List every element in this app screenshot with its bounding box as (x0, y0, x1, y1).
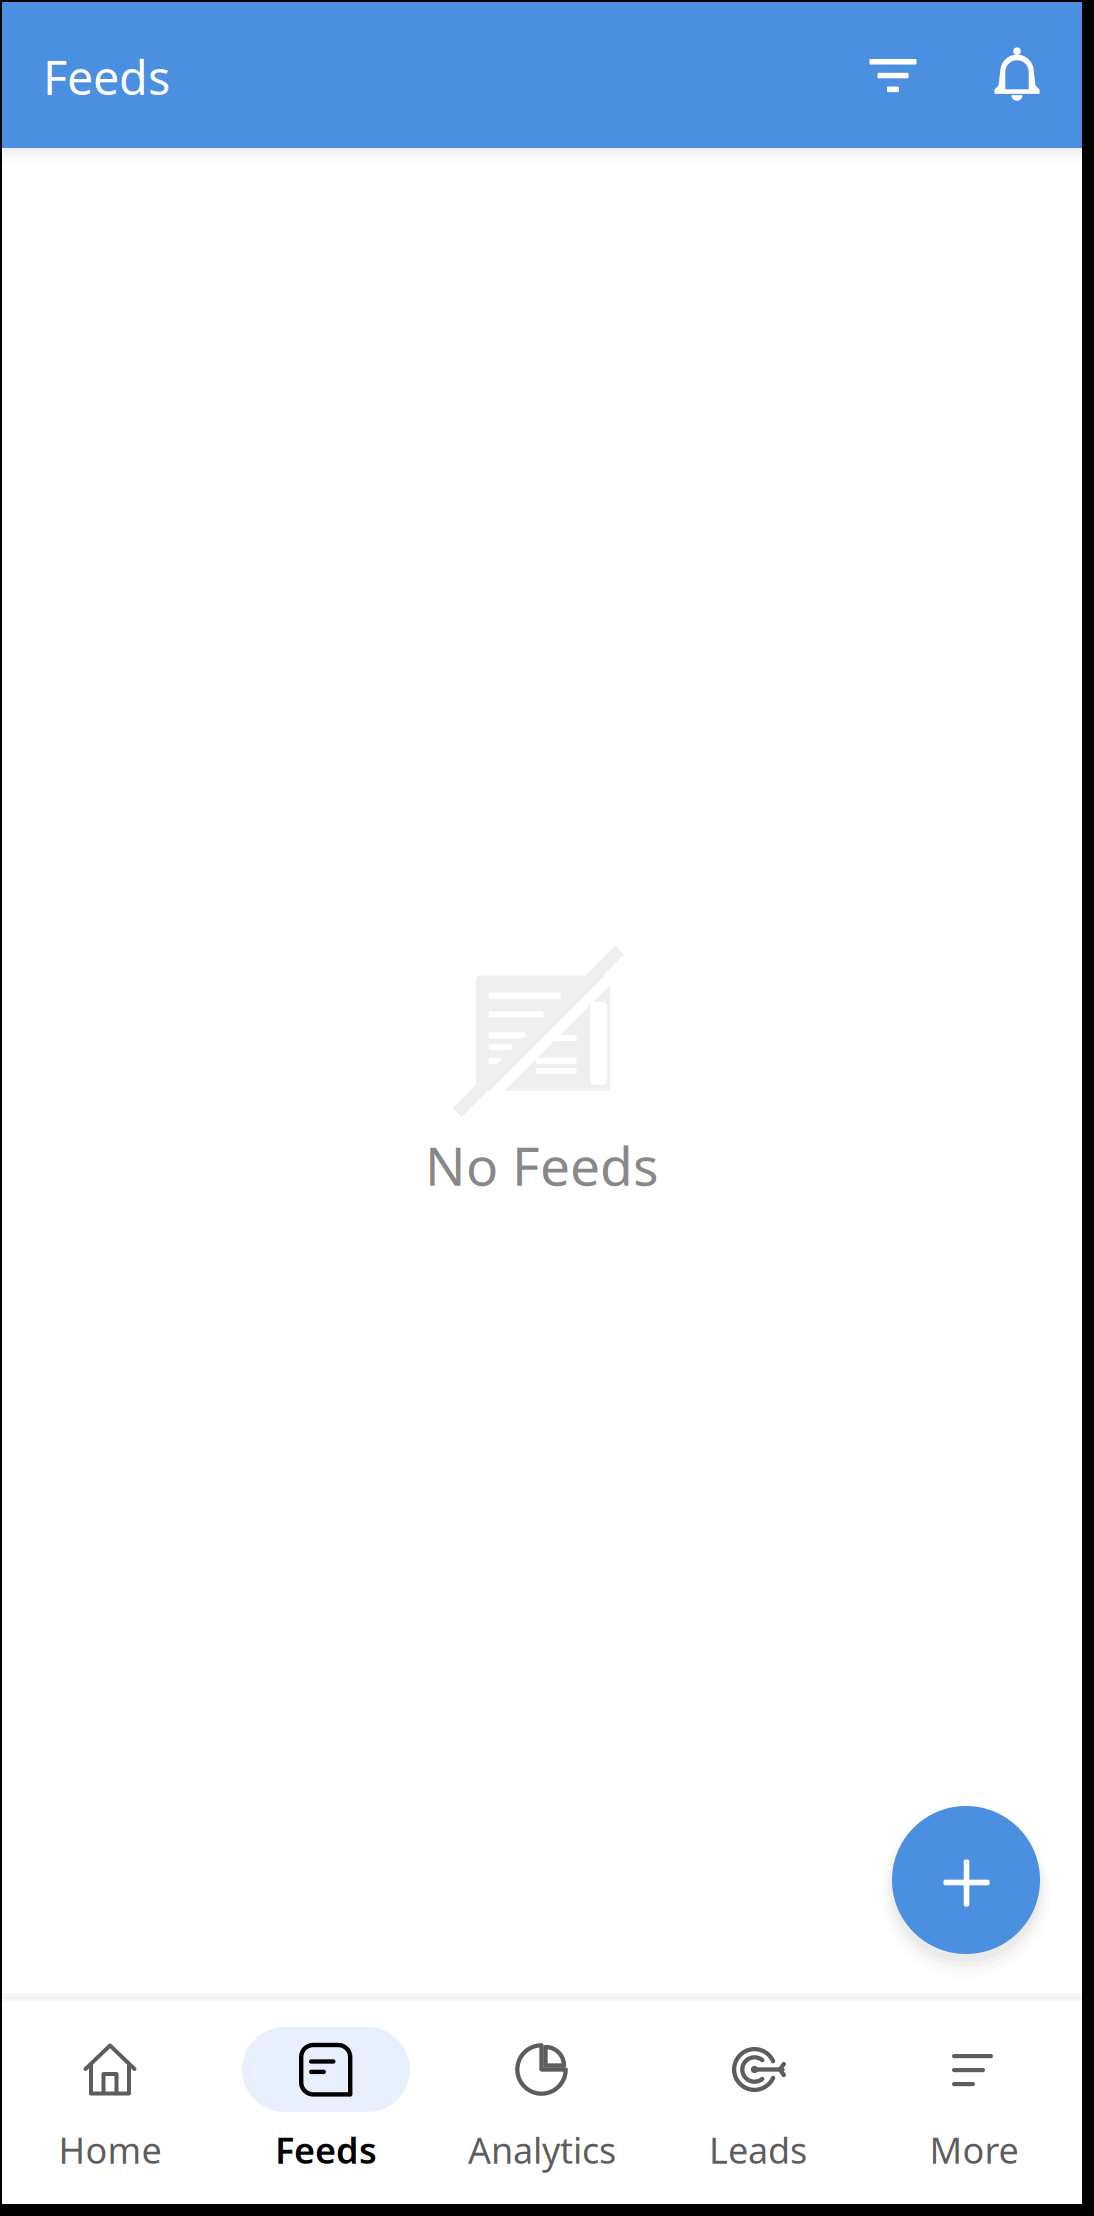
staticText: Home (58, 2126, 161, 2174)
staticText: No Feeds (425, 1130, 659, 1200)
button[interactable]: Notifications (984, 36, 1050, 114)
button[interactable]: Filter (859, 36, 927, 113)
staticText: Feeds (275, 2126, 377, 2174)
button[interactable]: Leads (650, 2001, 866, 2204)
button[interactable]: Add (873, 1787, 1059, 1973)
staticText: Feeds (43, 46, 170, 108)
staticText: Analytics (468, 2126, 616, 2174)
button[interactable]: More (866, 2001, 1082, 2204)
staticText: Leads (709, 2126, 807, 2174)
button[interactable]: Home (2, 2001, 218, 2204)
button[interactable]: Analytics (434, 2001, 650, 2204)
button[interactable]: Feeds (218, 2001, 434, 2204)
staticText: More (929, 2126, 1018, 2174)
